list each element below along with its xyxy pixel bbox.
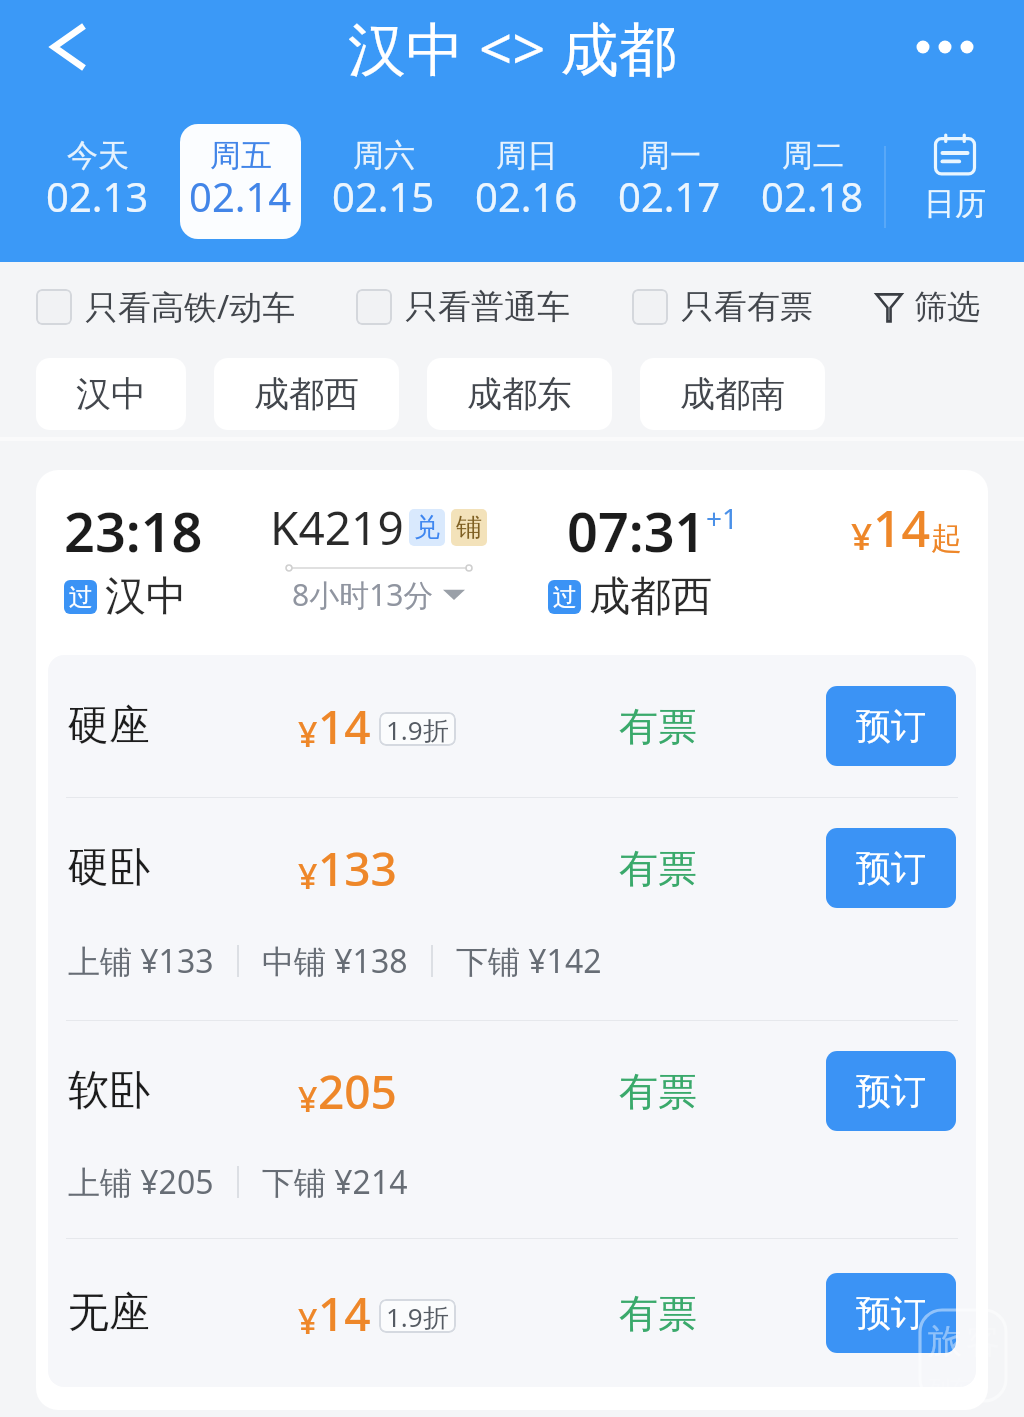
staticText: 有票 <box>619 1289 819 1338</box>
staticText: 下铺 ¥142 <box>456 939 602 983</box>
staticText: 预订 <box>856 1291 926 1335</box>
staticText: 过 <box>553 582 577 612</box>
button[interactable]: 汉中 <box>36 358 186 430</box>
staticText: 只看有票 <box>681 286 813 328</box>
staticText: 软卧 <box>68 1065 298 1117</box>
button[interactable]: 预订 <box>826 686 956 766</box>
button[interactable]: 预订 <box>826 1051 956 1131</box>
staticText: ¥ <box>851 510 873 560</box>
button[interactable]: 日历 <box>886 110 1024 262</box>
staticText: 汉中 <> 成都 <box>348 8 677 87</box>
staticText: 列车 <box>928 1375 972 1401</box>
staticText: 中铺 ¥138 <box>262 939 408 983</box>
button[interactable]: 只看高铁/动车 <box>36 284 296 329</box>
button[interactable]: More options <box>908 18 982 92</box>
staticText: +1 <box>706 499 739 537</box>
button[interactable]: 今天 <box>37 124 158 239</box>
staticText: ¥ <box>298 711 318 757</box>
button[interactable]: 预订 <box>826 828 956 908</box>
staticText: 有票 <box>619 702 819 751</box>
button[interactable]: 软卧 <box>48 1021 976 1238</box>
staticText: 有票 <box>619 844 819 893</box>
button[interactable]: 周日 <box>466 124 587 239</box>
button[interactable]: 周六 <box>323 124 444 239</box>
button[interactable]: 周五 <box>180 124 301 239</box>
staticText: 02.14 <box>189 169 292 223</box>
staticText: 02.16 <box>475 169 578 223</box>
staticText: 14 <box>318 1282 371 1345</box>
staticText: 周二 <box>782 136 844 175</box>
button[interactable]: 周二 <box>752 124 873 239</box>
staticText: 下铺 ¥214 <box>262 1160 408 1204</box>
button[interactable]: 成都西 <box>214 358 399 430</box>
staticText: 硬卧 <box>68 842 298 894</box>
staticText: 02.15 <box>332 169 435 223</box>
staticText: 成都西 <box>254 372 359 416</box>
staticText: 07:31 <box>567 494 706 568</box>
staticText: 成都南 <box>680 372 785 416</box>
staticText: 成都东 <box>467 372 572 416</box>
button[interactable]: 23:18 <box>36 470 988 655</box>
staticText: 无座 <box>68 1287 298 1339</box>
staticText: 23:18 <box>64 494 203 568</box>
staticText: ¥ <box>298 1076 318 1122</box>
staticText: 有票 <box>619 1067 819 1116</box>
staticText: 铺 <box>456 511 482 544</box>
button[interactable]: Back <box>32 16 110 94</box>
staticText: 14 <box>318 695 371 758</box>
staticText: ¥ <box>298 853 318 899</box>
staticText: 周日 <box>496 136 558 175</box>
staticText: 133 <box>318 837 397 900</box>
button[interactable]: 周一 <box>609 124 730 239</box>
button[interactable]: 硬座 <box>48 655 976 797</box>
staticText: 硬座 <box>68 700 298 752</box>
staticText: 预订 <box>856 704 926 748</box>
staticText: 1.9折 <box>386 1299 449 1333</box>
staticText: 上铺 ¥133 <box>68 939 214 983</box>
button[interactable]: 硬卧 <box>48 798 976 1020</box>
button[interactable]: 无座 <box>48 1239 976 1387</box>
staticText: ¥ <box>298 1298 318 1344</box>
button[interactable]: 成都南 <box>640 358 825 430</box>
staticText: 起 <box>931 519 962 558</box>
staticText: 客 <box>966 1320 1000 1363</box>
staticText: 汉中 <box>105 571 187 623</box>
staticText: 只看普通车 <box>405 286 570 328</box>
button[interactable]: 预订 <box>826 1273 956 1353</box>
button[interactable]: 只看有票 <box>632 286 813 328</box>
button[interactable]: 只看普通车 <box>356 286 570 328</box>
staticText: K4219 <box>270 496 404 559</box>
staticText: 今天 <box>67 136 129 175</box>
staticText: 1.9折 <box>386 712 449 746</box>
staticText: 过 <box>69 582 93 612</box>
staticText: 14 <box>873 494 931 562</box>
staticText: 筛选 <box>914 286 980 328</box>
staticText: 只看高铁/动车 <box>85 284 296 329</box>
staticText: 周六 <box>353 136 415 175</box>
staticText: 02.18 <box>761 169 864 223</box>
staticText: 8小时13分 <box>292 574 434 615</box>
staticText: 汉中 <box>76 372 146 416</box>
staticText: 02.13 <box>46 169 149 223</box>
staticText: 旅 <box>928 1320 962 1363</box>
staticText: 成都西 <box>589 571 712 623</box>
button[interactable]: 成都东 <box>427 358 612 430</box>
staticText: 周五 <box>210 136 272 175</box>
staticText: 周一 <box>639 136 701 175</box>
staticText: 日历 <box>924 184 986 223</box>
staticText: 预订 <box>856 1069 926 1113</box>
staticText: 预订 <box>856 846 926 890</box>
staticText: 兑 <box>414 511 440 544</box>
button[interactable]: 筛选 <box>876 286 980 328</box>
staticText: 205 <box>318 1060 397 1123</box>
staticText: 上铺 ¥205 <box>68 1160 214 1204</box>
staticText: 02.17 <box>618 169 721 223</box>
